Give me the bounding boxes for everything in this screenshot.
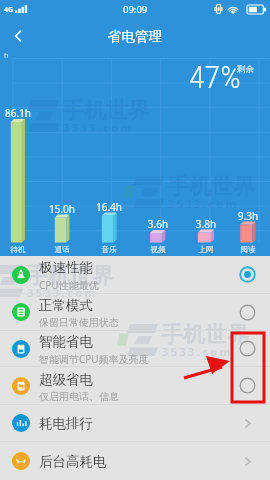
staticText: 正常模式 (39, 297, 93, 314)
staticText: 手机世界 (161, 321, 249, 349)
staticText: 4G (4, 5, 14, 15)
staticText: CPU性能最优 (39, 278, 99, 292)
button[interactable]: 耗电排行 (0, 405, 270, 441)
staticText: 耗电排行 (39, 415, 93, 432)
other: Unselected (239, 340, 256, 357)
staticText: h (4, 51, 9, 61)
staticText: 16.4h (84, 200, 134, 214)
staticText: 47% (189, 58, 241, 96)
staticText: 3533.com (63, 120, 134, 135)
other: Open (241, 417, 254, 430)
staticText: 09:09 (123, 3, 148, 16)
other: Open (241, 455, 254, 468)
staticText: 智能省电 (39, 333, 93, 350)
staticText: 剩余 (237, 64, 254, 75)
staticText: 智能调节CPU频率及亮度 (39, 352, 149, 366)
staticText: 3.8h (181, 217, 231, 231)
staticText: 极速性能 (39, 259, 93, 276)
staticText: 3533.com (162, 344, 233, 359)
staticText: 保留日常使用状态 (39, 316, 119, 329)
staticText: 9.3h (223, 209, 270, 223)
staticText: 15.0h (37, 202, 87, 216)
staticText: 音乐 (84, 245, 134, 254)
staticText: 视频 (133, 245, 183, 254)
staticText: 3533.com (27, 285, 98, 300)
staticText: 手机世界 (62, 97, 150, 125)
other: Selected (239, 266, 256, 283)
button[interactable]: 超级省电 (0, 367, 270, 404)
staticText: 86.1h (0, 106, 43, 120)
staticText: 省电管理 (108, 28, 162, 45)
button[interactable]: 正常模式 (0, 294, 270, 330)
staticText: 待机 (0, 245, 43, 254)
staticText: 手机世界 (167, 173, 255, 201)
staticText: 仅启用电话、信息 (39, 390, 119, 403)
staticText: 3.6h (133, 217, 183, 231)
staticText: 后台高耗电 (39, 453, 107, 470)
staticText: 通话 (37, 245, 87, 254)
staticText: 阅读 (223, 245, 270, 254)
button[interactable]: Back (0, 18, 36, 54)
staticText: 超级省电 (39, 371, 93, 388)
other: Unselected (239, 377, 256, 394)
button[interactable]: 极速性能 (0, 256, 270, 293)
staticText: 手机世界 (26, 262, 114, 290)
staticText: 上网 (181, 245, 231, 254)
button[interactable]: 智能省电 (0, 331, 270, 366)
button[interactable]: 后台高耗电 (0, 442, 270, 480)
other: Unselected (239, 304, 256, 321)
